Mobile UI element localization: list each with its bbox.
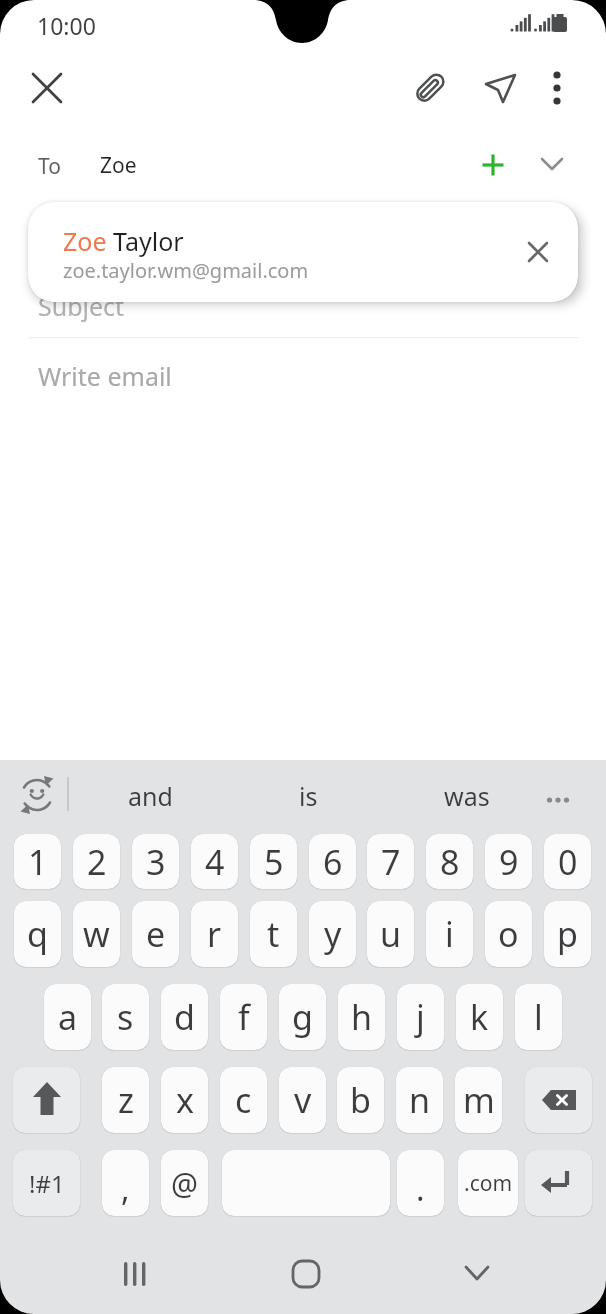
button[interactable]: p bbox=[544, 901, 591, 967]
staticText: m bbox=[463, 1077, 495, 1123]
staticText: , bbox=[121, 1167, 130, 1211]
staticText: was bbox=[444, 779, 490, 813]
button[interactable] bbox=[13, 1067, 80, 1133]
staticText: g bbox=[292, 994, 313, 1040]
button[interactable]: 2 bbox=[73, 834, 120, 889]
button[interactable]: 7 bbox=[367, 834, 414, 889]
staticText: .com bbox=[464, 1169, 513, 1198]
staticText: r bbox=[207, 911, 222, 957]
button[interactable]: 4 bbox=[191, 834, 238, 889]
staticText: w bbox=[83, 911, 110, 957]
button[interactable]: 1 bbox=[14, 834, 61, 889]
staticText: Zoe bbox=[100, 151, 137, 180]
button[interactable]: f bbox=[220, 984, 267, 1050]
staticText: Zoe Taylor bbox=[63, 224, 184, 258]
button[interactable] bbox=[453, 1250, 501, 1298]
button[interactable]: v bbox=[279, 1067, 326, 1133]
staticText: and bbox=[128, 779, 173, 813]
button[interactable]: j bbox=[397, 984, 444, 1050]
staticText: n bbox=[409, 1077, 431, 1123]
button[interactable] bbox=[406, 64, 454, 112]
button[interactable]: e bbox=[132, 901, 179, 967]
staticText: v bbox=[294, 1077, 312, 1123]
staticText: 3 bbox=[146, 839, 166, 885]
button[interactable]: k bbox=[456, 984, 503, 1050]
button[interactable]: b bbox=[337, 1067, 384, 1133]
button[interactable] bbox=[525, 1067, 592, 1133]
staticText: l bbox=[534, 994, 543, 1040]
button[interactable]: Zoe Taylor bbox=[28, 202, 578, 302]
button[interactable]: 6 bbox=[309, 834, 356, 889]
button[interactable]: t bbox=[250, 901, 297, 967]
button[interactable]: !#1 bbox=[13, 1150, 80, 1216]
staticText: z bbox=[118, 1077, 134, 1123]
button[interactable]: 9 bbox=[485, 834, 532, 889]
staticText: Write email bbox=[38, 359, 172, 393]
button[interactable]: u bbox=[367, 901, 414, 967]
button[interactable]: h bbox=[338, 984, 385, 1050]
staticText: f bbox=[238, 994, 250, 1040]
button[interactable]: s bbox=[102, 984, 149, 1050]
button[interactable]: w bbox=[73, 901, 120, 967]
button[interactable]: . bbox=[397, 1150, 444, 1216]
staticText: u bbox=[380, 911, 402, 957]
staticText: x bbox=[176, 1077, 194, 1123]
button[interactable]: 0 bbox=[544, 834, 591, 889]
button[interactable]: x bbox=[161, 1067, 208, 1133]
button[interactable]: n bbox=[396, 1067, 443, 1133]
staticText: To bbox=[38, 152, 61, 181]
button[interactable]: m bbox=[455, 1067, 502, 1133]
staticText: y bbox=[324, 911, 342, 957]
staticText: c bbox=[235, 1077, 252, 1123]
button[interactable]: i bbox=[426, 901, 473, 967]
staticText: 4 bbox=[205, 839, 225, 885]
button[interactable]: z bbox=[102, 1067, 149, 1133]
button[interactable] bbox=[23, 64, 71, 112]
staticText: a bbox=[58, 994, 78, 1040]
button[interactable] bbox=[533, 64, 581, 112]
staticText: 9 bbox=[499, 839, 519, 885]
button[interactable]: d bbox=[161, 984, 208, 1050]
button[interactable] bbox=[476, 64, 524, 112]
button[interactable]: l bbox=[515, 984, 562, 1050]
button[interactable] bbox=[530, 143, 574, 187]
button[interactable] bbox=[282, 1250, 330, 1298]
staticText: j bbox=[416, 994, 425, 1040]
staticText: 1 bbox=[28, 839, 48, 885]
staticText: @ bbox=[171, 1163, 198, 1204]
button[interactable] bbox=[111, 1250, 159, 1298]
button[interactable]: g bbox=[279, 984, 326, 1050]
button[interactable] bbox=[534, 768, 582, 824]
staticText: 5 bbox=[264, 839, 284, 885]
button[interactable] bbox=[514, 228, 562, 276]
button[interactable]: 5 bbox=[250, 834, 297, 889]
staticText: h bbox=[351, 994, 373, 1040]
staticText: is bbox=[299, 779, 318, 813]
button[interactable]: y bbox=[309, 901, 356, 967]
staticText: 8 bbox=[440, 839, 460, 885]
staticText: q bbox=[27, 911, 48, 957]
button[interactable]: @ bbox=[161, 1150, 208, 1216]
button[interactable]: q bbox=[14, 901, 61, 967]
button[interactable]: 8 bbox=[426, 834, 473, 889]
button[interactable]: .com bbox=[458, 1150, 518, 1216]
button[interactable]: was bbox=[407, 768, 527, 824]
staticText: d bbox=[174, 994, 195, 1040]
button[interactable]: , bbox=[102, 1150, 149, 1216]
button[interactable] bbox=[222, 1150, 390, 1216]
button[interactable]: is bbox=[248, 768, 368, 824]
staticText: Subject bbox=[38, 289, 125, 323]
staticText: k bbox=[470, 994, 489, 1040]
button[interactable]: 3 bbox=[132, 834, 179, 889]
button[interactable] bbox=[471, 143, 515, 187]
button[interactable] bbox=[525, 1150, 592, 1216]
button[interactable]: and bbox=[90, 768, 210, 824]
button[interactable]: a bbox=[44, 984, 91, 1050]
staticText: 7 bbox=[381, 839, 401, 885]
staticText: b bbox=[350, 1077, 371, 1123]
button[interactable]: o bbox=[485, 901, 532, 967]
button[interactable]: r bbox=[191, 901, 238, 967]
button[interactable] bbox=[14, 772, 60, 818]
button[interactable]: c bbox=[220, 1067, 267, 1133]
staticText: 10:00 bbox=[37, 10, 96, 41]
